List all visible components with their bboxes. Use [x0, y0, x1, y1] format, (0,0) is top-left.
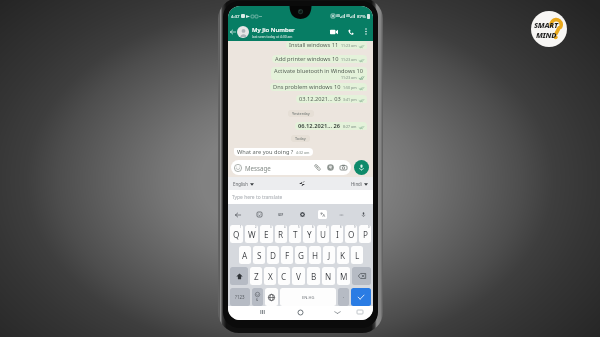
staticText: Message [245, 164, 271, 172]
button[interactable]: Hide keyboard [331, 306, 343, 318]
button[interactable]: Z [250, 267, 262, 285]
button[interactable]: Dns problem windows 10 [270, 83, 367, 91]
button[interactable]: J [323, 246, 335, 264]
button[interactable]: Stickers [253, 208, 266, 221]
button[interactable]: M [337, 267, 350, 285]
staticText: Q [233, 229, 240, 240]
button[interactable]: N [322, 267, 335, 285]
button[interactable]: Shift [230, 267, 248, 285]
button[interactable]: EN-HG [280, 288, 336, 306]
staticText: 11:23 am [341, 57, 357, 62]
button[interactable]: Message [231, 160, 351, 175]
button[interactable]: Back [228, 22, 237, 41]
button[interactable]: D [267, 246, 279, 264]
staticText: 1:50 pm [343, 85, 357, 90]
button[interactable]: R [275, 225, 287, 243]
staticText: Today [295, 136, 306, 141]
button[interactable]: Y [303, 225, 315, 243]
button[interactable]: T [289, 225, 301, 243]
button[interactable]: GIF [274, 208, 287, 221]
button[interactable]: C [278, 267, 290, 285]
staticText: U [320, 229, 326, 240]
staticText: M [340, 271, 348, 282]
button[interactable]: Recents [256, 306, 268, 318]
staticText: C [281, 271, 287, 282]
staticText: S [257, 250, 262, 261]
button[interactable]: 06.12.2021... 26 [295, 122, 367, 130]
staticText: H [312, 250, 319, 261]
button[interactable]: Voice input [357, 208, 370, 221]
staticText: Add printer windows 10 [275, 55, 339, 63]
button[interactable]: G [295, 246, 307, 264]
staticText: Hindi [351, 181, 362, 187]
button[interactable]: More options [359, 22, 373, 41]
staticText: last seen today at 4:30 am [252, 34, 293, 38]
staticText: T [293, 229, 298, 240]
button[interactable]: K [337, 246, 349, 264]
staticText: A [242, 250, 248, 261]
staticText: 11:23 am [341, 75, 357, 80]
staticText: R [278, 229, 284, 240]
staticText: 11:23 am [341, 43, 357, 48]
button[interactable]: F [281, 246, 293, 264]
button[interactable]: O [345, 225, 357, 243]
staticText: X [268, 271, 273, 282]
staticText: 1 [240, 225, 242, 229]
button[interactable]: Activate bluetooth in Windows 10 [271, 67, 367, 80]
staticText: W [248, 229, 256, 240]
button[interactable]: P [359, 225, 371, 243]
button[interactable]: Add printer windows 10 [272, 55, 367, 63]
button[interactable]: B [307, 267, 320, 285]
staticText: Yesterday [292, 111, 310, 116]
staticText: 4:37 [231, 13, 240, 19]
button[interactable]: Settings [296, 208, 309, 221]
button[interactable]: Video call [326, 22, 342, 41]
button[interactable]: H [309, 246, 321, 264]
button[interactable]: W [245, 225, 258, 243]
button[interactable]: Keyboard [354, 306, 366, 318]
button[interactable]: X [264, 267, 276, 285]
staticText: Activate bluetooth in Windows 10 [274, 67, 364, 75]
button[interactable]: Home [294, 306, 306, 318]
staticText: 9 [354, 225, 356, 229]
button[interactable]: Hindi [349, 179, 370, 189]
button[interactable]: Q [230, 225, 243, 243]
button[interactable]: Backspace [352, 267, 371, 285]
button[interactable]: Enter [351, 288, 371, 306]
staticText: O [348, 229, 355, 240]
button[interactable]: E [260, 225, 273, 243]
staticText: 7 [326, 225, 328, 229]
staticText: 4G [346, 14, 350, 18]
button[interactable]: A [239, 246, 251, 264]
button[interactable]: Type here to translate [228, 190, 373, 204]
button[interactable]: S [253, 246, 265, 264]
staticText: ?123 [235, 294, 245, 300]
button[interactable]: 03.12.2021... 03 [296, 95, 367, 103]
staticText: MIND [536, 30, 557, 40]
button[interactable]: More [335, 208, 348, 221]
button[interactable]: Translate [318, 210, 327, 219]
staticText: Install windows 11 [289, 41, 339, 49]
button[interactable]: . [338, 288, 349, 306]
button[interactable]: Emoji [252, 288, 263, 306]
staticText: V [296, 271, 301, 282]
staticText: 4G [336, 14, 340, 18]
staticText: 87% [357, 13, 366, 19]
button[interactable]: V [292, 267, 305, 285]
staticText: K [340, 250, 346, 261]
button[interactable]: Language [265, 288, 278, 306]
button[interactable]: U [317, 225, 329, 243]
button[interactable]: Back [231, 208, 244, 221]
staticText: GIF [278, 213, 284, 217]
staticText: English [233, 181, 248, 187]
button[interactable]: English [231, 179, 256, 189]
button[interactable]: L [351, 246, 363, 264]
button[interactable]: Install windows 11 [286, 41, 367, 49]
button[interactable]: Call [342, 22, 359, 41]
staticText: 8 [340, 225, 342, 229]
button[interactable]: Voice message [354, 160, 369, 175]
button[interactable]: What are you doing ? [234, 148, 313, 156]
button[interactable]: ?123 [230, 288, 250, 306]
button[interactable]: I [331, 225, 343, 243]
staticText: 03.12.2021... 03 [299, 95, 341, 103]
